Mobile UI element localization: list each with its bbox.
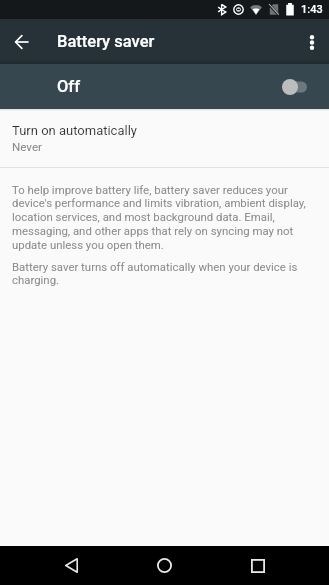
button[interactable]: Navigate up <box>8 28 36 56</box>
button[interactable]: Turn on automatically <box>0 109 329 167</box>
button[interactable]: Off <box>0 64 329 109</box>
staticText: Battery saver turns off automatically wh… <box>12 260 311 287</box>
staticText: Battery saver <box>57 32 155 51</box>
button[interactable]: Home <box>118 546 211 585</box>
staticText: Turn on automatically <box>12 123 137 138</box>
staticText: Off <box>57 77 81 96</box>
staticText: To help improve battery life, battery sa… <box>12 183 311 252</box>
button[interactable]: Recent apps <box>211 546 304 585</box>
button[interactable]: More options <box>298 28 326 56</box>
staticText: Never <box>12 140 42 154</box>
staticText: 1:43 <box>301 3 323 16</box>
button[interactable]: Back <box>25 546 118 585</box>
